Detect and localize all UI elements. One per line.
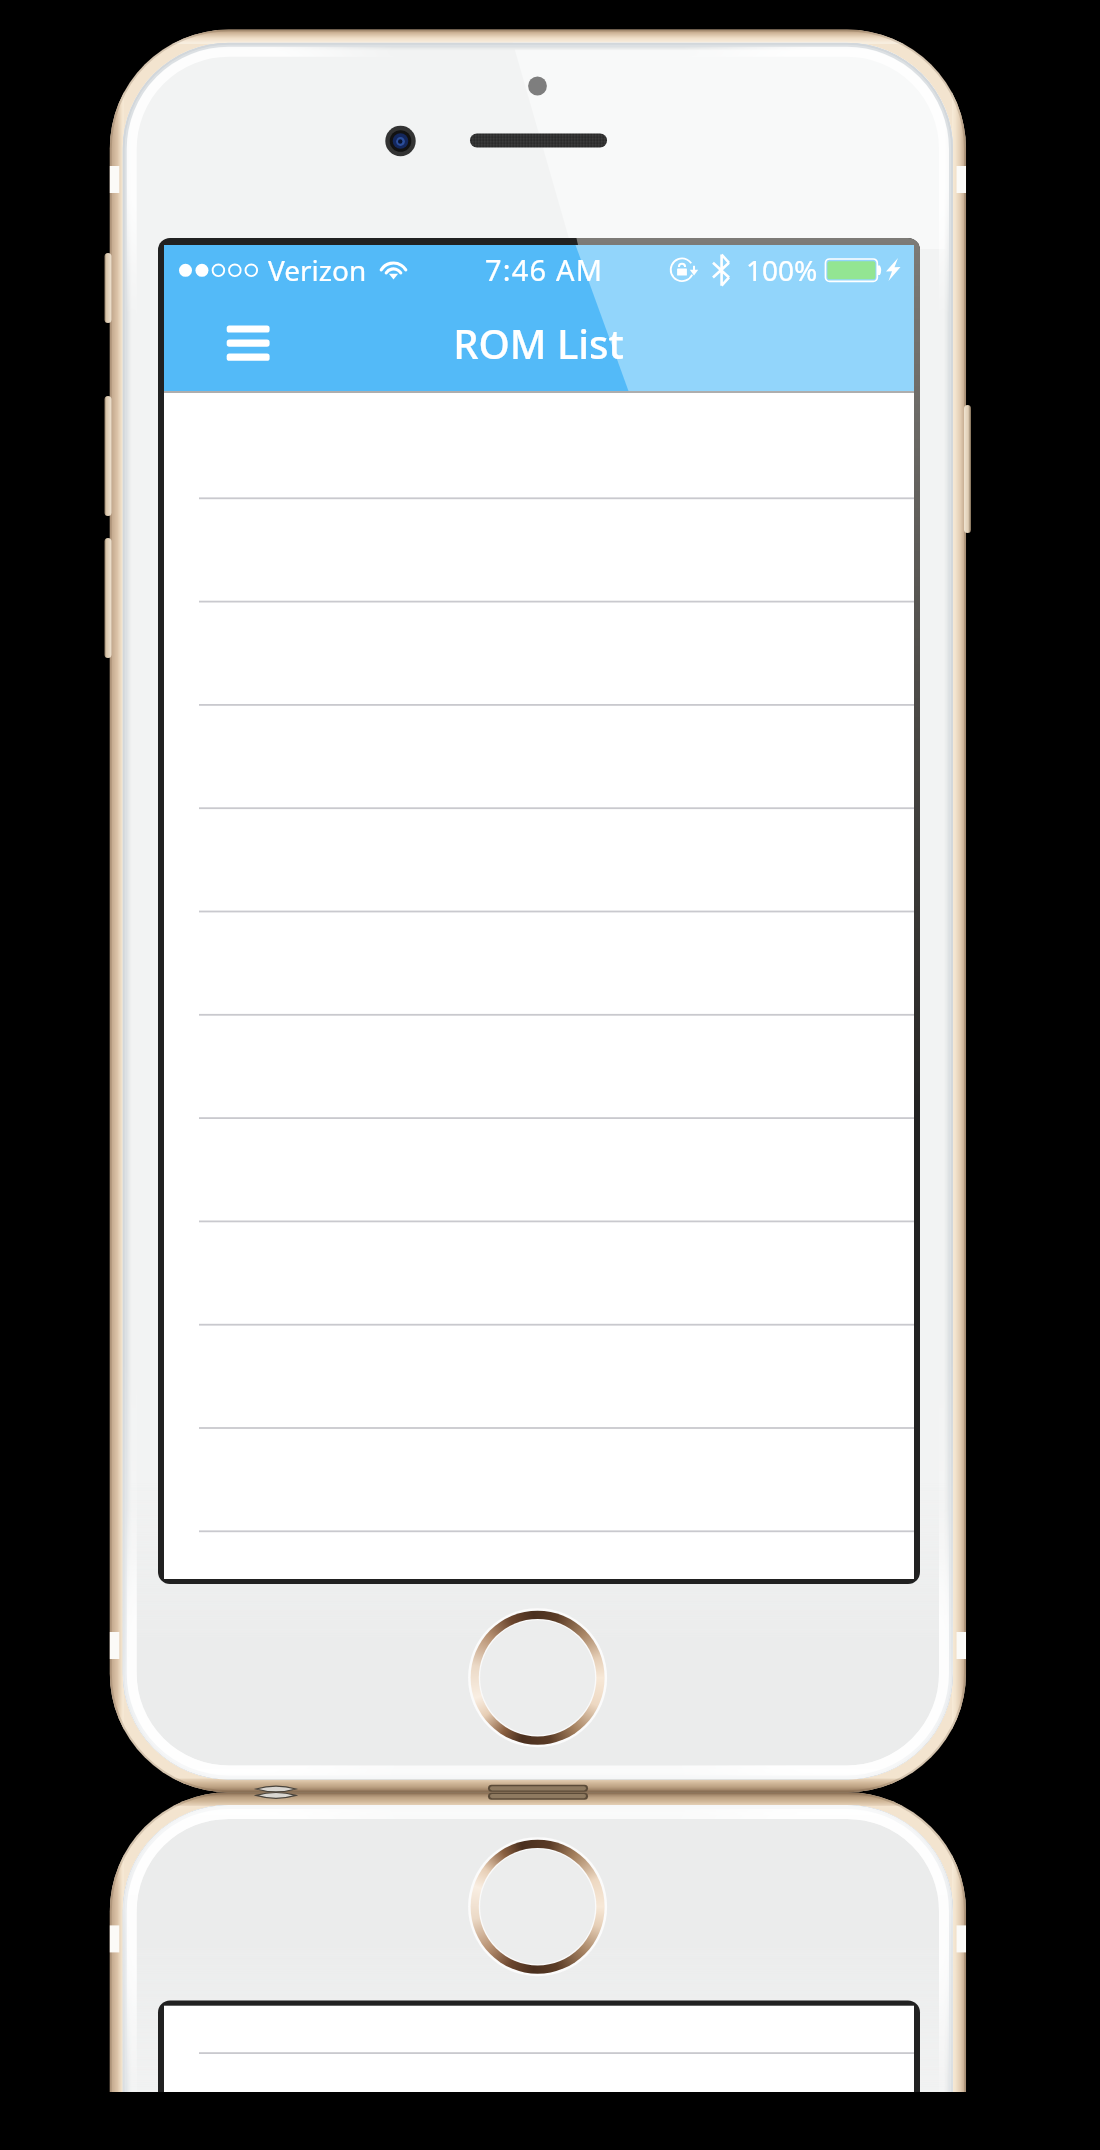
button[interactable] — [164, 1433, 914, 1537]
button[interactable] — [164, 601, 914, 705]
button[interactable]: Open navigation menu — [200, 300, 296, 388]
button[interactable] — [164, 809, 914, 913]
button[interactable] — [164, 497, 914, 601]
button[interactable] — [164, 1017, 914, 1121]
button[interactable] — [164, 705, 914, 809]
staticText: 7:46 AM — [485, 250, 604, 289]
button[interactable] — [164, 913, 914, 1017]
staticText: ROM List — [453, 316, 624, 370]
button[interactable] — [164, 1329, 914, 1433]
button[interactable] — [164, 1225, 914, 1329]
staticText: Verizon — [268, 251, 367, 289]
staticText: 100% — [746, 251, 818, 289]
button[interactable] — [164, 1121, 914, 1225]
